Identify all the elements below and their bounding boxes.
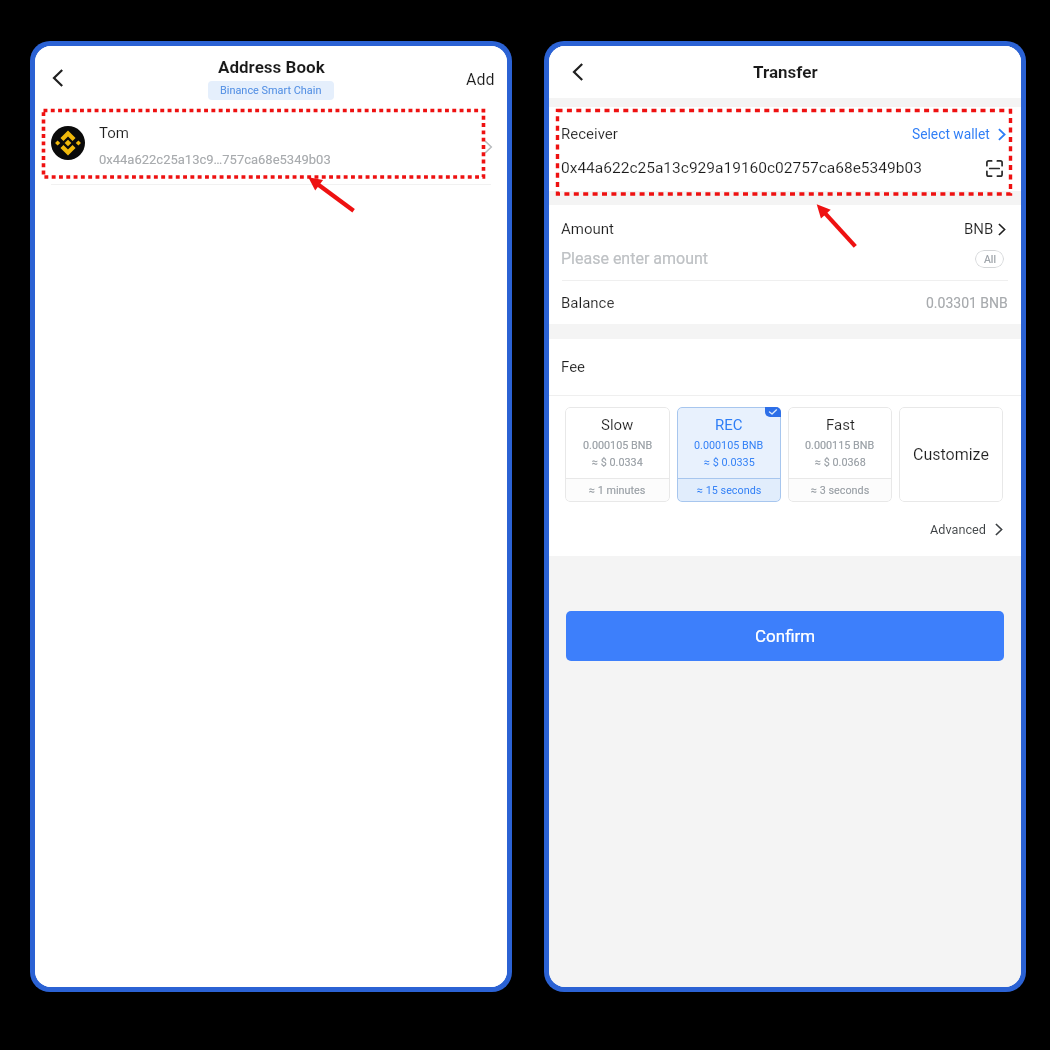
staticText: Binance Smart Chain bbox=[220, 84, 322, 97]
button[interactable]: Scan QR code bbox=[985, 159, 1004, 178]
staticText: Select wallet bbox=[912, 126, 990, 142]
staticText: 0x44a622c25a13c929a19160c02757ca68e5349b… bbox=[561, 159, 922, 177]
button[interactable]: Add bbox=[458, 60, 503, 99]
button[interactable]: Fast bbox=[788, 407, 892, 502]
staticText: ≈ $ 0.0368 bbox=[815, 456, 866, 469]
staticText: Receiver bbox=[561, 125, 618, 143]
staticText: Add bbox=[466, 70, 495, 89]
staticText: All bbox=[984, 253, 996, 265]
button[interactable]: Back bbox=[561, 55, 595, 89]
staticText: BNB bbox=[964, 220, 994, 238]
staticText: ≈ $ 0.0334 bbox=[592, 456, 643, 469]
button[interactable]: REC bbox=[677, 407, 781, 502]
staticText: Customize bbox=[913, 445, 989, 464]
staticText: Slow bbox=[601, 416, 634, 434]
staticText: Fast bbox=[826, 416, 855, 434]
staticText: ≈ $ 0.0335 bbox=[704, 456, 755, 469]
button[interactable]: Select wallet bbox=[912, 126, 1008, 142]
button[interactable]: BNB bbox=[964, 220, 1008, 238]
staticText: Balance bbox=[561, 294, 615, 312]
staticText: Transfer bbox=[753, 62, 818, 82]
staticText: Address Book bbox=[218, 57, 325, 77]
button[interactable]: All bbox=[975, 250, 1004, 268]
staticText: 0.03301 BNB bbox=[926, 295, 1008, 311]
staticText: Advanced bbox=[930, 522, 986, 537]
staticText: 0.000105 BNB bbox=[694, 439, 764, 452]
button[interactable]: Slow bbox=[565, 407, 670, 502]
staticText: ≈ 1 minutes bbox=[589, 484, 646, 497]
staticText: 0x44a622c25a13c9…757ca68e5349b03 bbox=[99, 152, 331, 167]
staticText: Please enter amount bbox=[561, 249, 709, 268]
staticText: ≈ 15 seconds bbox=[697, 484, 762, 497]
button[interactable]: Advanced bbox=[930, 522, 1005, 537]
button[interactable]: Confirm bbox=[566, 611, 1004, 661]
staticText: 0.000115 BNB bbox=[805, 439, 875, 452]
button[interactable]: Back bbox=[41, 61, 75, 95]
staticText: REC bbox=[715, 416, 743, 434]
staticText: Tom bbox=[99, 124, 129, 142]
staticText: ≈ 3 seconds bbox=[811, 484, 870, 497]
staticText: Fee bbox=[561, 358, 586, 376]
staticText: 0.000105 BNB bbox=[583, 439, 653, 452]
button[interactable]: Tom bbox=[35, 109, 507, 184]
staticText: Confirm bbox=[755, 626, 816, 646]
staticText: Amount bbox=[561, 220, 614, 238]
button[interactable]: Customize bbox=[899, 407, 1003, 502]
